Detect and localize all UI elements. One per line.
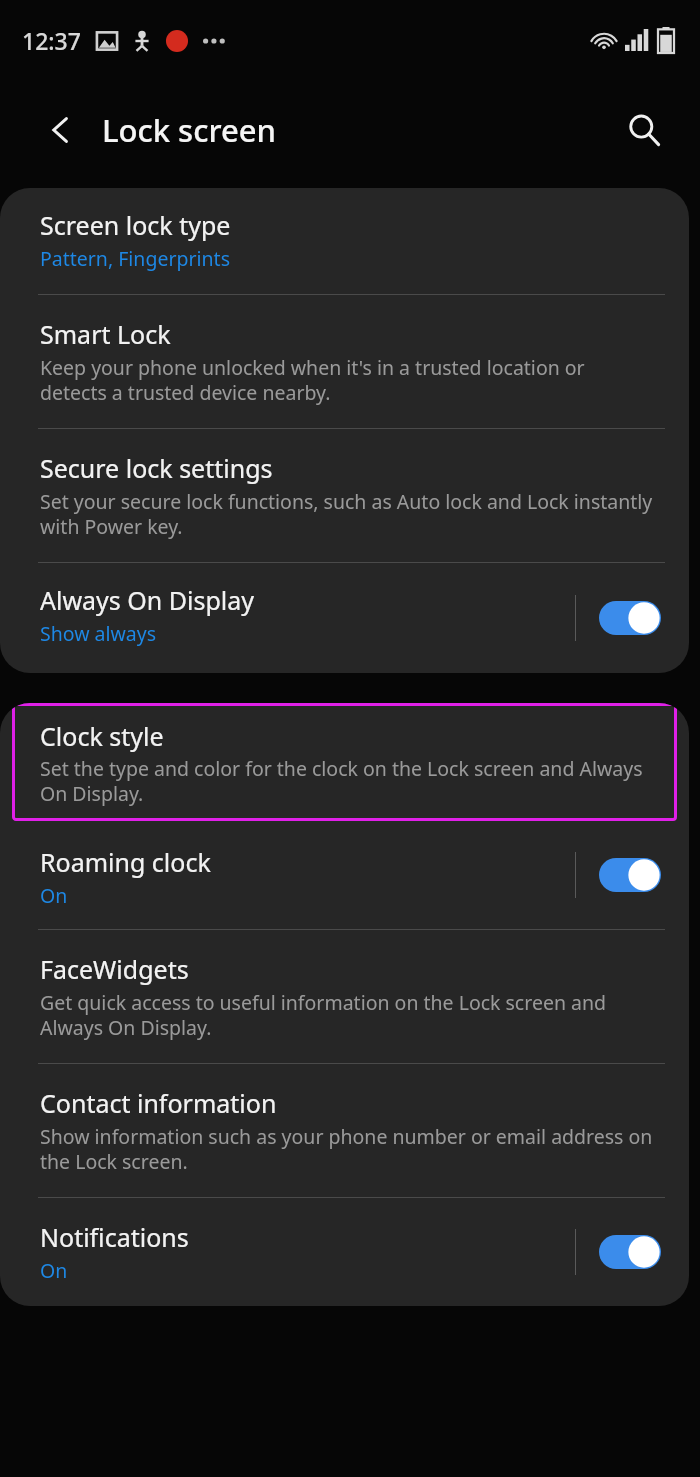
button[interactable]: Back bbox=[34, 103, 88, 157]
button[interactable]: Contact information bbox=[0, 1064, 689, 1197]
button[interactable]: Clock style bbox=[12, 703, 677, 821]
staticText: Set the type and color for the clock on … bbox=[40, 755, 659, 807]
staticText: Clock style bbox=[40, 719, 164, 753]
staticText: Smart Lock bbox=[40, 317, 171, 351]
button[interactable]: Notifications bbox=[0, 1198, 689, 1306]
staticText: Show information such as your phone numb… bbox=[40, 1123, 653, 1175]
staticText: Show always bbox=[40, 620, 157, 647]
button[interactable]: Roaming clock bbox=[0, 821, 689, 929]
staticText: Notifications bbox=[40, 1220, 189, 1254]
button[interactable]: Toggle Notifications bbox=[593, 1229, 667, 1275]
button[interactable]: Smart Lock bbox=[0, 295, 689, 428]
staticText: Set your secure lock functions, such as … bbox=[40, 488, 653, 540]
staticText: Keep your phone unlocked when it's in a … bbox=[40, 354, 653, 406]
button[interactable]: Search bbox=[616, 102, 672, 158]
staticText: On bbox=[40, 1257, 68, 1284]
staticText: Roaming clock bbox=[40, 845, 211, 879]
button[interactable]: Always On Display bbox=[0, 563, 689, 673]
staticText: Pattern, Fingerprints bbox=[40, 245, 230, 272]
staticText: Screen lock type bbox=[40, 208, 231, 242]
staticText: Secure lock settings bbox=[40, 451, 273, 485]
staticText: Contact information bbox=[40, 1086, 277, 1120]
staticText: FaceWidgets bbox=[40, 952, 189, 986]
staticText: Get quick access to useful information o… bbox=[40, 989, 653, 1041]
staticText: On bbox=[40, 882, 68, 909]
staticText: Lock screen bbox=[102, 109, 276, 151]
button[interactable]: Toggle Roaming clock bbox=[593, 852, 667, 898]
button[interactable]: FaceWidgets bbox=[0, 930, 689, 1063]
button[interactable]: Toggle Always On Display bbox=[593, 595, 667, 641]
staticText: 12:37 bbox=[22, 25, 81, 56]
button[interactable]: Screen lock type bbox=[0, 188, 689, 294]
button[interactable]: Secure lock settings bbox=[0, 429, 689, 562]
staticText: Always On Display bbox=[40, 583, 255, 617]
